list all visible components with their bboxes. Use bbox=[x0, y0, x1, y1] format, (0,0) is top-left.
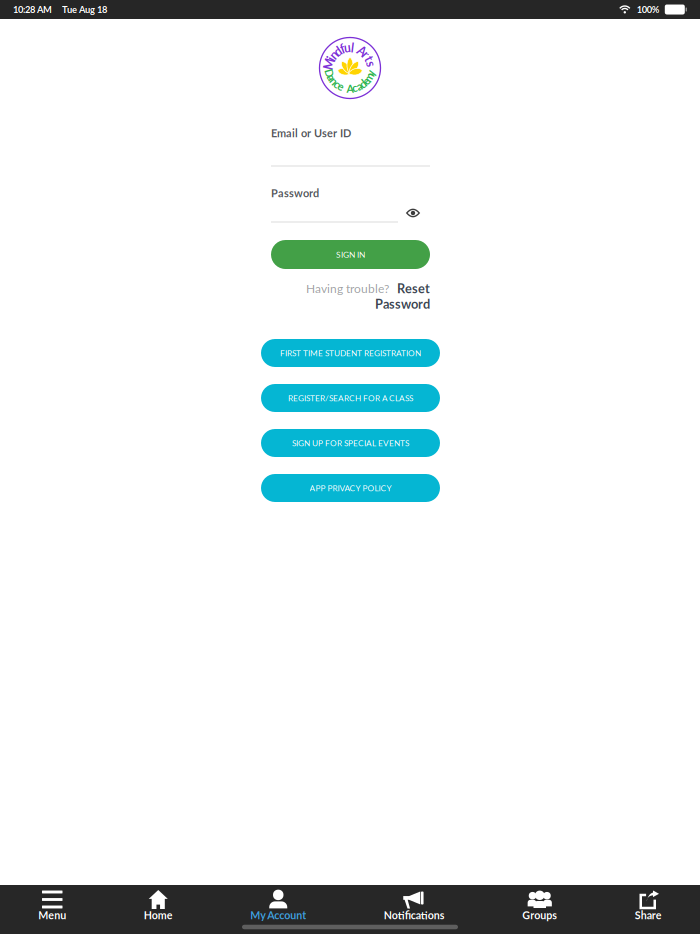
staticText: r bbox=[347, 40, 352, 55]
staticText: Having trouble? bbox=[306, 281, 389, 295]
staticText: 10:28 AM bbox=[13, 4, 52, 15]
staticText: APP PRIVACY POLICY bbox=[309, 483, 391, 493]
staticText: Reset bbox=[397, 281, 430, 296]
button[interactable]: Share bbox=[629, 889, 668, 919]
staticText: Notifications bbox=[384, 909, 445, 921]
staticText: t bbox=[347, 40, 352, 55]
staticText: Password bbox=[271, 186, 319, 199]
staticText: SIGN IN bbox=[336, 249, 365, 260]
button[interactable]: Groups bbox=[516, 889, 563, 919]
button[interactable]: SIGN IN bbox=[271, 240, 430, 269]
staticText: a bbox=[347, 82, 352, 95]
button[interactable]: Menu bbox=[32, 889, 72, 919]
staticText: Password bbox=[375, 296, 430, 311]
button[interactable]: Show password bbox=[401, 202, 425, 224]
staticText: f bbox=[348, 40, 352, 55]
staticText: FIRST TIME STUDENT REGISTRATION bbox=[280, 348, 421, 358]
staticText: Menu bbox=[38, 909, 66, 921]
button[interactable]: My Account bbox=[244, 889, 312, 919]
staticText: l bbox=[348, 40, 351, 55]
staticText: n bbox=[346, 40, 353, 55]
staticText: y bbox=[347, 82, 353, 95]
staticText: i bbox=[348, 40, 351, 55]
button[interactable]: Notifications bbox=[378, 889, 451, 919]
staticText: M bbox=[344, 40, 356, 55]
staticText: e bbox=[347, 82, 353, 95]
button[interactable]: REGISTER/SEARCH FOR A CLASS bbox=[261, 384, 440, 412]
staticText: Share bbox=[635, 909, 662, 921]
staticText: m bbox=[345, 82, 354, 95]
staticText bbox=[348, 40, 351, 55]
button[interactable]: SIGN UP FOR SPECIAL EVENTS bbox=[261, 429, 440, 457]
staticText: D bbox=[346, 82, 354, 95]
staticText: d bbox=[347, 82, 353, 95]
staticText: SIGN UP FOR SPECIAL EVENTS bbox=[292, 438, 409, 448]
staticText: Groups bbox=[522, 909, 557, 921]
staticText: u bbox=[346, 40, 353, 55]
staticText: c bbox=[347, 82, 352, 95]
button[interactable]: Home bbox=[138, 889, 179, 919]
staticText: A bbox=[345, 40, 354, 55]
staticText: d bbox=[346, 40, 353, 55]
staticText: s bbox=[347, 40, 352, 55]
button[interactable]: Having trouble? bbox=[271, 281, 430, 311]
staticText: A bbox=[346, 82, 353, 95]
button[interactable]: FIRST TIME STUDENT REGISTRATION bbox=[261, 339, 440, 367]
staticText bbox=[348, 82, 351, 95]
staticText: Email or User ID bbox=[271, 126, 351, 139]
staticText: REGISTER/SEARCH FOR A CLASS bbox=[288, 393, 413, 403]
staticText: Tue Aug 18 bbox=[62, 4, 107, 15]
staticText: a bbox=[347, 82, 352, 95]
staticText: e bbox=[347, 82, 353, 95]
staticText: 100% bbox=[637, 4, 660, 15]
staticText: Home bbox=[144, 909, 173, 921]
staticText: n bbox=[347, 82, 353, 95]
staticText: My Account bbox=[250, 909, 306, 921]
button[interactable]: APP PRIVACY POLICY bbox=[261, 474, 440, 502]
staticText: c bbox=[347, 82, 352, 95]
